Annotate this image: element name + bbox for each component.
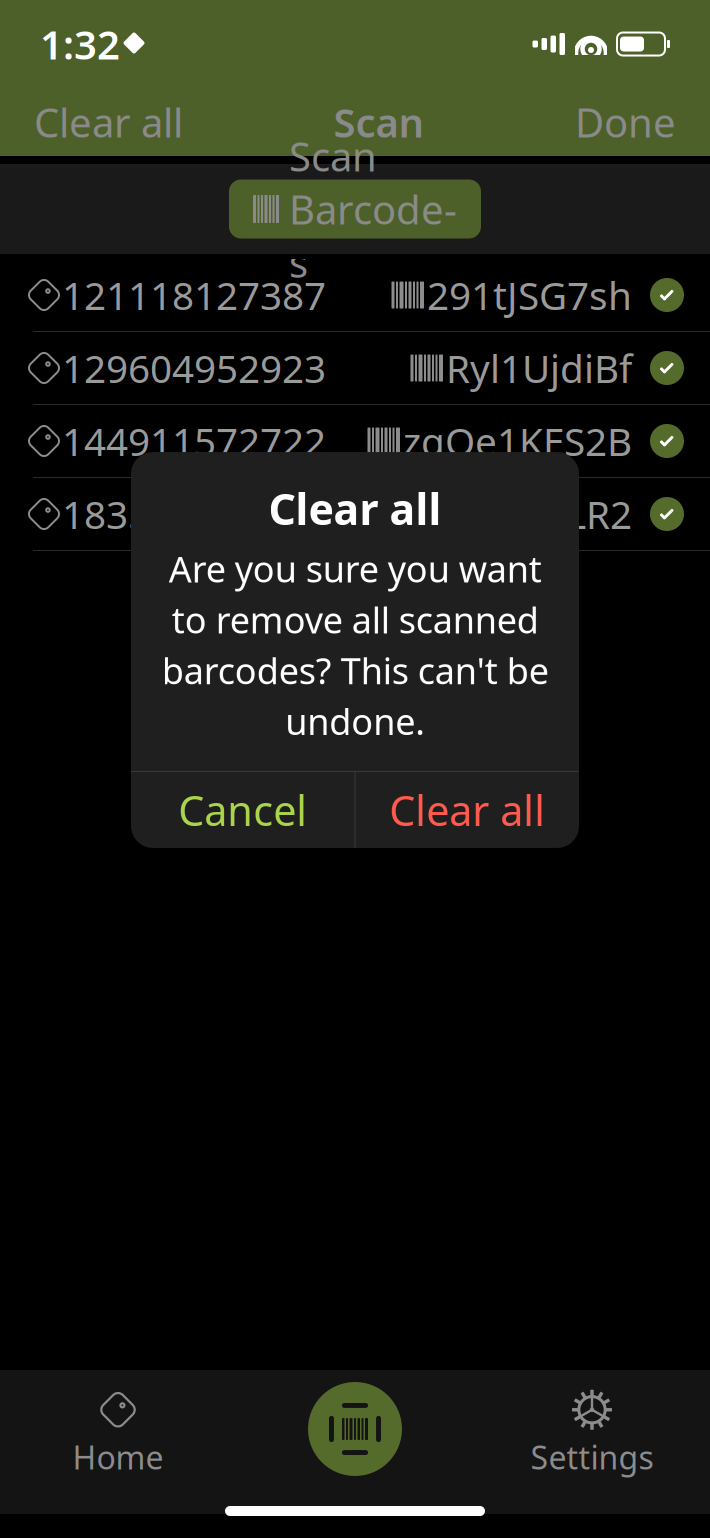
button[interactable]: 183561427424 [0,478,710,551]
staticText: Scan Barcodes [289,129,457,289]
button[interactable]: Clear all [0,90,217,154]
staticText: 291tJSG7sh [427,269,632,321]
staticText: Clear all [389,782,545,837]
staticText: 183561427424 [62,488,326,540]
button[interactable]: Cancel [131,772,354,848]
staticText: 121118127387 [62,269,326,321]
button[interactable]: Done [541,90,710,154]
button[interactable]: 144911572722 [0,405,710,478]
staticText: Ryl1UjdiBf [446,342,632,394]
staticText: Clear all [34,95,183,148]
staticText: Settings [530,1436,653,1478]
button[interactable]: Settings [492,1384,692,1484]
staticText: Clear all [268,480,441,537]
button[interactable]: 129604952923 [0,332,710,405]
button[interactable]: Scan Barcodes [229,179,481,238]
staticText: b3Wx19PLR2 [397,488,632,540]
staticText: Are you sure you want to remove all scan… [161,545,548,745]
staticText: 1:32 [40,17,120,70]
staticText: 129604952923 [62,342,326,394]
button[interactable]: Clear all [355,772,579,848]
button[interactable]: Home [18,1384,218,1484]
staticText: Home [72,1436,163,1478]
staticText: Cancel [178,782,307,837]
staticText: zgOe1KES2B [403,415,632,467]
staticText: Done [575,95,676,148]
staticText: 144911572722 [62,415,326,467]
staticText: Scan [333,95,424,148]
button[interactable]: Scan [308,1382,402,1476]
button[interactable]: 121118127387 [0,259,710,332]
